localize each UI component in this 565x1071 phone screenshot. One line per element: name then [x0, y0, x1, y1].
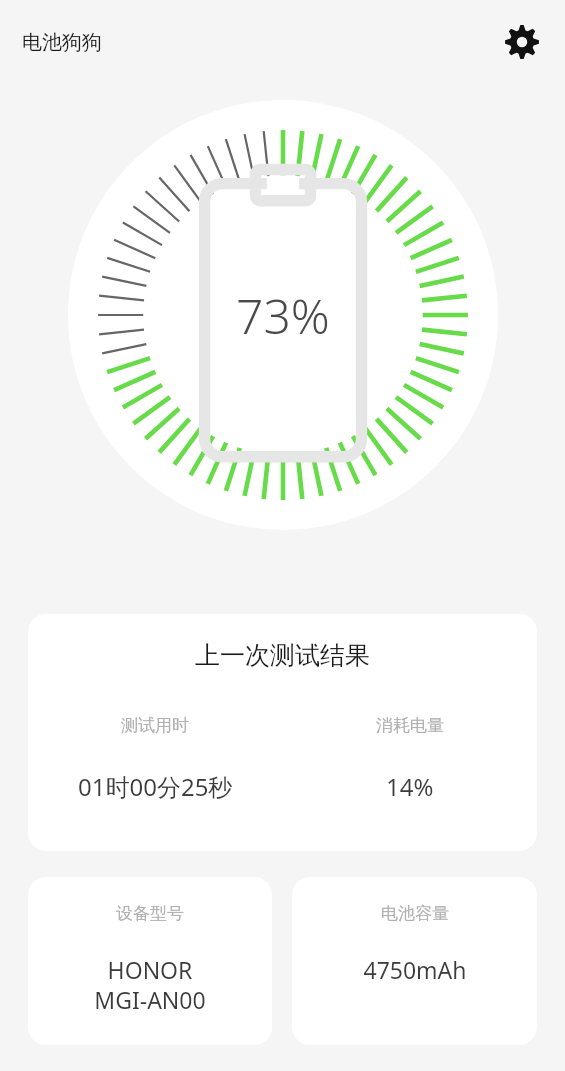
staticText: 上一次测试结果 — [195, 640, 370, 671]
button[interactable]: 电池容量 — [292, 877, 537, 1045]
staticText: 设备型号 — [116, 903, 184, 924]
staticText: 4750mAh — [363, 954, 467, 985]
staticText: 01时00分25秒 — [78, 770, 233, 803]
button[interactable]: 设备型号 — [28, 877, 272, 1045]
staticText: 消耗电量 — [376, 715, 444, 736]
staticText: 电池狗狗 — [22, 30, 102, 55]
staticText: 73% — [236, 283, 330, 348]
staticText: 电池容量 — [381, 903, 449, 924]
staticText: HONOR MGI-AN00 — [94, 954, 206, 1015]
button[interactable]: 上一次测试结果 — [28, 614, 537, 851]
staticText: 测试用时 — [121, 715, 189, 736]
staticText: 14% — [386, 770, 434, 803]
button[interactable]: Settings — [499, 19, 545, 65]
